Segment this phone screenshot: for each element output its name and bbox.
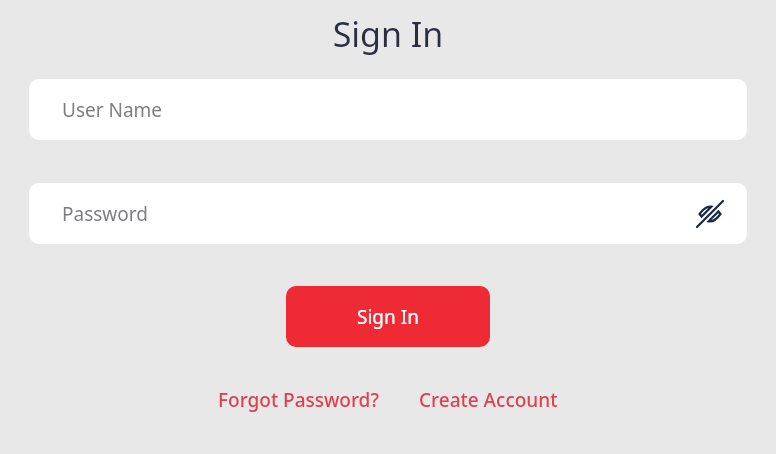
staticText: Forgot Password? [218,387,379,413]
button[interactable]: Forgot Password? [216,383,381,417]
button[interactable]: Sign In [286,286,490,347]
staticText: Create Account [419,387,558,413]
staticText: Password [62,201,695,227]
staticText: Sign In [357,304,419,330]
staticText: User Name [62,97,163,123]
button[interactable]: Password [29,183,747,244]
staticText: Sign In [0,11,776,57]
button[interactable]: Show password [695,199,725,229]
button[interactable]: Create Account [417,383,560,417]
button[interactable]: User Name [29,79,747,140]
